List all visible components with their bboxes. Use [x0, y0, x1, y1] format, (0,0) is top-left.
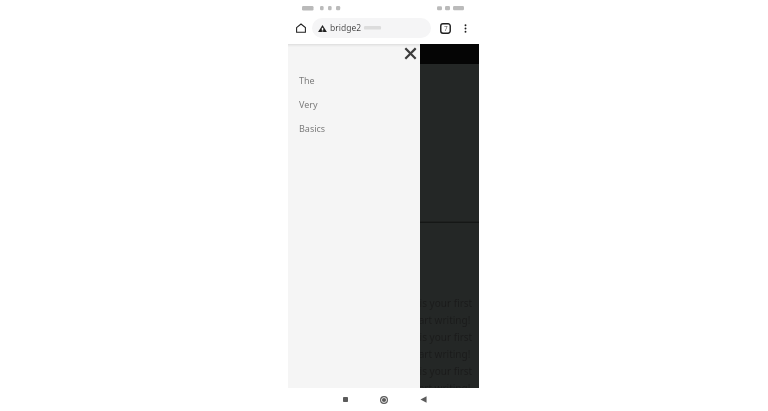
button[interactable]: Very	[288, 96, 420, 112]
button[interactable]: Close menu	[400, 43, 420, 63]
staticText: bridge2	[330, 22, 362, 34]
staticText: first blog post. Start writing!	[339, 313, 471, 327]
staticText: Hello world. This is your first	[339, 296, 473, 310]
staticText: Hello world. This is your first	[339, 364, 473, 378]
staticText: 7	[444, 24, 448, 33]
button[interactable]: Basics	[288, 120, 420, 136]
button[interactable]: bridge2	[312, 18, 431, 38]
staticText: The	[299, 74, 315, 86]
staticText: Hello world. This is your first	[339, 330, 473, 344]
button[interactable]: Home	[291, 18, 311, 38]
button[interactable]: More options	[455, 18, 475, 38]
staticText: first blog post. Start writing!	[339, 381, 471, 388]
staticText: first blog post. Start writing!	[339, 347, 471, 361]
staticText: Very	[299, 98, 318, 110]
button[interactable]: The	[288, 72, 420, 88]
button[interactable]: Switch or close tabs	[435, 18, 455, 38]
button[interactable]: Home	[373, 388, 395, 411]
button[interactable]: Recent apps	[334, 388, 356, 411]
button[interactable]: Back	[412, 388, 434, 411]
staticText: Basics	[299, 122, 326, 134]
